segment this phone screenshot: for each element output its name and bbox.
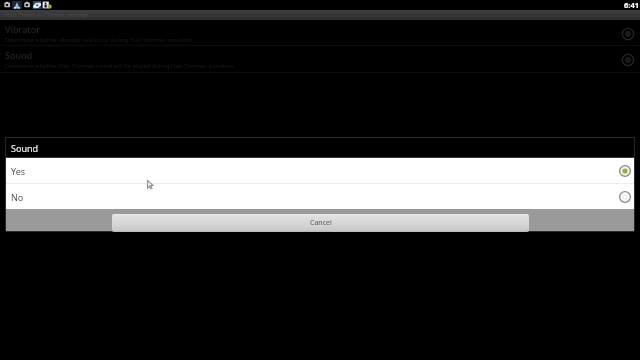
- button[interactable]: Yes: [6, 158, 634, 183]
- button[interactable]: Vibrator: [0, 21, 640, 46]
- button[interactable]: Cancel: [112, 214, 529, 232]
- other: Toggle Vibrator: [621, 27, 635, 41]
- staticText: Sound: [11, 142, 39, 154]
- staticText: Hair Trimmer Clipper settings: [5, 11, 89, 19]
- staticText: Determine whether vibration will occur d…: [5, 36, 194, 44]
- staticText: 6:41: [624, 0, 639, 10]
- staticText: Yes: [11, 165, 26, 177]
- staticText: Sound: [5, 49, 33, 61]
- other: Toggle Sound: [621, 53, 635, 67]
- button[interactable]: No: [6, 184, 634, 209]
- staticText: Cancel: [310, 218, 332, 228]
- staticText: No: [11, 191, 24, 203]
- button[interactable]: Sound: [0, 47, 640, 72]
- staticText: Determine whether Hair Trimmer sound wil…: [5, 62, 235, 70]
- staticText: Vibrator: [5, 23, 41, 35]
